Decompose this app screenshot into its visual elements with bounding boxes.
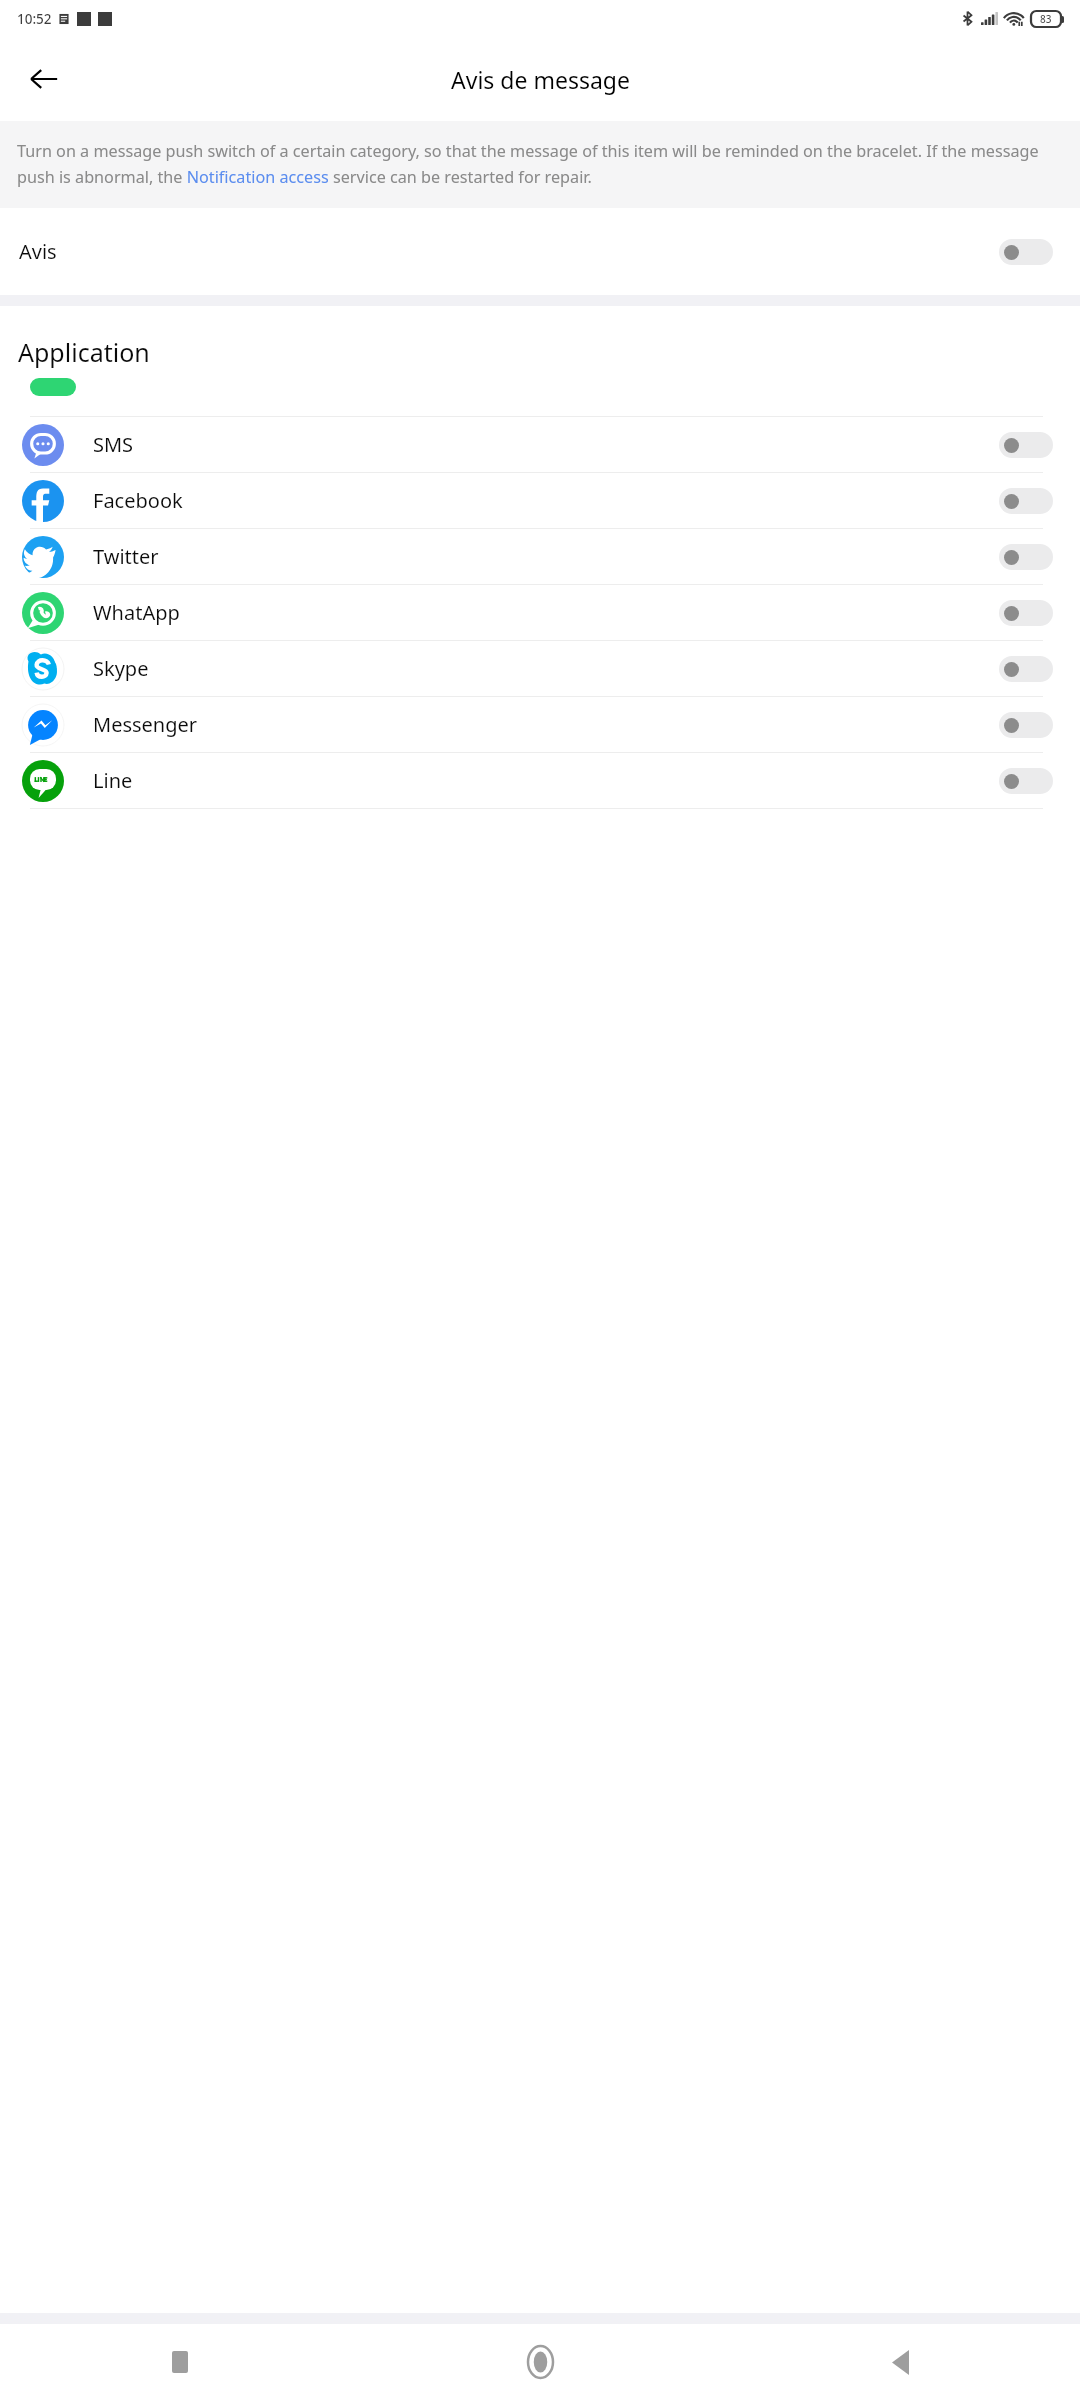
staticText: 10:52 bbox=[17, 10, 52, 28]
staticText: Skype bbox=[93, 655, 149, 682]
button[interactable]: Toggle bbox=[999, 488, 1053, 514]
button[interactable]: Messenger bbox=[0, 697, 1080, 752]
staticText: SMS bbox=[93, 431, 134, 458]
button[interactable]: Toggle bbox=[999, 600, 1053, 626]
staticText: Avis de message bbox=[451, 64, 630, 95]
button[interactable]: Toggle bbox=[999, 544, 1053, 570]
button[interactable]: Home bbox=[360, 2324, 720, 2400]
button[interactable]: Back bbox=[720, 2324, 1080, 2400]
button[interactable]: Recents bbox=[0, 2324, 360, 2400]
staticText: Messenger bbox=[93, 711, 198, 738]
staticText: 83 bbox=[1040, 12, 1052, 26]
staticText: WhatApp bbox=[93, 599, 180, 626]
button[interactable]: Toggle bbox=[999, 656, 1053, 682]
staticText: Line bbox=[93, 767, 133, 794]
button[interactable]: Avis bbox=[0, 208, 1080, 295]
staticText: Turn on a message push switch of a certa… bbox=[17, 140, 1058, 188]
button[interactable]: Twitter bbox=[0, 529, 1080, 584]
button[interactable]: Toggle bbox=[999, 712, 1053, 738]
button[interactable]: Back bbox=[16, 51, 72, 107]
staticText: Application bbox=[18, 335, 150, 369]
staticText: Twitter bbox=[93, 543, 159, 570]
staticText: Avis bbox=[19, 238, 57, 265]
button[interactable]: Skype bbox=[0, 641, 1080, 696]
button[interactable]: Toggle bbox=[999, 768, 1053, 794]
button[interactable]: Line bbox=[0, 753, 1080, 808]
button[interactable]: WhatApp bbox=[0, 585, 1080, 640]
button[interactable]: Toggle bbox=[999, 239, 1053, 265]
button[interactable]: Facebook bbox=[0, 473, 1080, 528]
staticText: Facebook bbox=[93, 487, 183, 514]
button[interactable]: Toggle bbox=[999, 432, 1053, 458]
button[interactable]: SMS bbox=[0, 417, 1080, 472]
